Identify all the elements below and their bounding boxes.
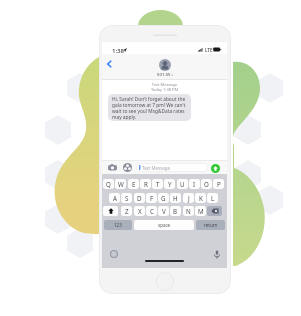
staticText: F [150, 194, 154, 202]
staticText: X [138, 207, 142, 215]
button[interactable]: 123 [104, 220, 132, 230]
button[interactable]: Text Message [136, 163, 208, 172]
staticText: H [173, 194, 178, 202]
staticText: Y [168, 180, 172, 188]
button[interactable]: Camera [108, 163, 117, 172]
button[interactable]: V [158, 206, 169, 216]
staticText: Text Message [142, 165, 170, 171]
button[interactable]: I [189, 179, 200, 189]
staticText: J [188, 194, 190, 202]
button[interactable]: Emoji keyboard [110, 250, 118, 258]
staticText: LTE [205, 47, 213, 53]
button[interactable]: D [134, 193, 145, 203]
staticText: C [150, 207, 154, 215]
button[interactable]: K [195, 193, 206, 203]
staticText: L [211, 194, 215, 202]
button[interactable]: E [128, 179, 139, 189]
staticText: S [125, 194, 129, 202]
button[interactable]: F [146, 193, 157, 203]
button[interactable]: 501-55 › [147, 58, 183, 78]
staticText: U [180, 180, 185, 188]
staticText: I [193, 180, 196, 188]
button[interactable]: T [152, 179, 163, 189]
staticText: return [204, 222, 218, 228]
staticText: B [173, 207, 178, 215]
staticText: A [113, 194, 117, 202]
button[interactable]: H [170, 193, 181, 203]
button[interactable]: Back [103, 57, 116, 70]
button[interactable]: Backspace [207, 206, 222, 216]
button[interactable]: U [177, 179, 188, 189]
button[interactable]: X [134, 206, 145, 216]
staticText: M [198, 207, 204, 215]
staticText: R [144, 180, 148, 188]
staticText: P [217, 180, 221, 188]
button[interactable]: O [201, 179, 212, 189]
button[interactable]: space [134, 220, 194, 230]
button[interactable]: Apps [123, 163, 132, 172]
staticText: O [204, 180, 209, 188]
staticText: K [199, 194, 203, 202]
staticText: Z [125, 207, 129, 215]
button[interactable]: Shift [103, 206, 118, 216]
button[interactable]: G [158, 193, 169, 203]
staticText: 501-55 › [147, 72, 183, 78]
staticText: 1:38 [112, 47, 124, 55]
staticText: Q [106, 180, 111, 188]
button[interactable]: J [183, 193, 194, 203]
button[interactable]: return [196, 220, 225, 230]
button[interactable]: N [183, 206, 194, 216]
button[interactable]: Z [121, 206, 132, 216]
button[interactable]: A [109, 193, 120, 203]
button[interactable]: C [146, 206, 157, 216]
staticText: G [161, 194, 166, 202]
button[interactable]: S [121, 193, 132, 203]
button[interactable]: Dictation [213, 250, 221, 259]
staticText: V [162, 207, 166, 215]
button[interactable]: Y [164, 179, 175, 189]
button[interactable]: M [195, 206, 206, 216]
button[interactable]: Hi, Sarah! Don't forget about the gala t… [108, 94, 191, 121]
button[interactable]: P [213, 179, 224, 189]
button[interactable]: Q [103, 179, 114, 189]
staticText: N [186, 207, 191, 215]
button[interactable]: L [207, 193, 218, 203]
staticText: Text Message Today 1:38 PM [102, 82, 227, 92]
button[interactable]: W [115, 179, 126, 189]
staticText: E [132, 180, 136, 188]
staticText: W [118, 180, 124, 188]
staticText: 123 [114, 222, 122, 228]
staticText: D [137, 194, 142, 202]
button[interactable]: B [170, 206, 181, 216]
button[interactable]: R [140, 179, 151, 189]
staticText: space [158, 222, 171, 228]
staticText: Hi, Sarah! Don't forget about the gala t… [112, 96, 186, 120]
staticText: T [156, 180, 160, 188]
button[interactable]: Send [211, 164, 220, 173]
